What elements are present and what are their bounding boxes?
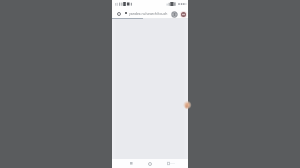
button[interactable]: Back xyxy=(126,159,136,168)
button[interactable]: Reload xyxy=(115,10,123,18)
button[interactable]: Recents xyxy=(163,159,173,168)
button[interactable]: Tabs xyxy=(170,10,178,18)
button[interactable]: Home xyxy=(145,159,155,168)
staticText: yandex.ru/search/touch xyxy=(129,11,168,16)
button[interactable]: Menu xyxy=(179,10,187,18)
